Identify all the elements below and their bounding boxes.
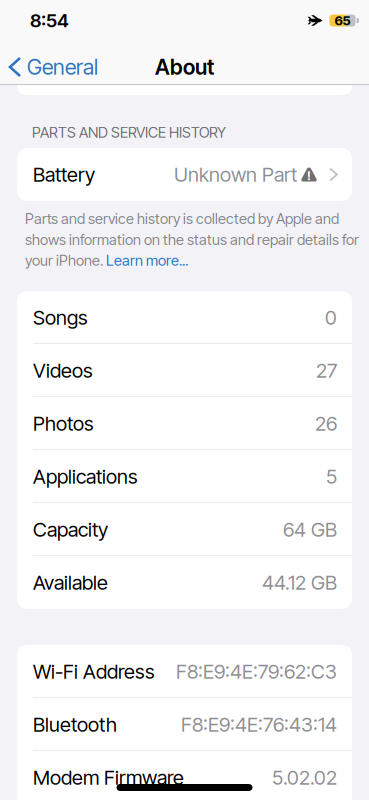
staticText: 65 — [334, 13, 350, 28]
staticText: Applications — [33, 465, 138, 488]
staticText: 5 — [326, 465, 337, 488]
staticText: Wi-Fi Address — [33, 660, 155, 683]
staticText: Battery — [33, 163, 95, 186]
staticText: 5.02.02 — [272, 766, 337, 789]
staticText: Songs — [33, 306, 88, 329]
button[interactable]: Battery — [17, 148, 352, 201]
staticText: Parts and service history is collected b… — [25, 210, 339, 227]
staticText: Available — [33, 571, 108, 594]
staticText: Modem Firmware — [33, 766, 184, 789]
staticText: Bluetooth — [33, 713, 117, 736]
staticText: PARTS AND SERVICE HISTORY — [32, 124, 226, 141]
button[interactable]: Back to General — [0, 54, 98, 80]
staticText: ! — [307, 169, 311, 183]
staticText: 26 — [315, 412, 337, 435]
staticText: Learn more... — [106, 252, 188, 269]
staticText: Photos — [33, 412, 94, 435]
staticText: 8:54 — [30, 9, 69, 31]
staticText: Capacity — [33, 518, 108, 541]
staticText: 44.12 GB — [262, 571, 337, 594]
staticText: 27 — [316, 359, 337, 382]
staticText: your iPhone. — [25, 252, 106, 269]
staticText: 0 — [325, 306, 337, 329]
staticText: About — [155, 54, 214, 80]
staticText: Videos — [33, 359, 93, 382]
button[interactable]: Learn more... — [106, 252, 188, 269]
staticText: Unknown Part — [174, 163, 297, 186]
staticText: F8:E9:4E:76:43:14 — [181, 713, 337, 736]
staticText: F8:E9:4E:79:62:C3 — [176, 660, 337, 683]
staticText: General — [27, 54, 98, 80]
staticText: shows information on the status and repa… — [25, 231, 359, 248]
staticText: 64 GB — [283, 518, 337, 541]
